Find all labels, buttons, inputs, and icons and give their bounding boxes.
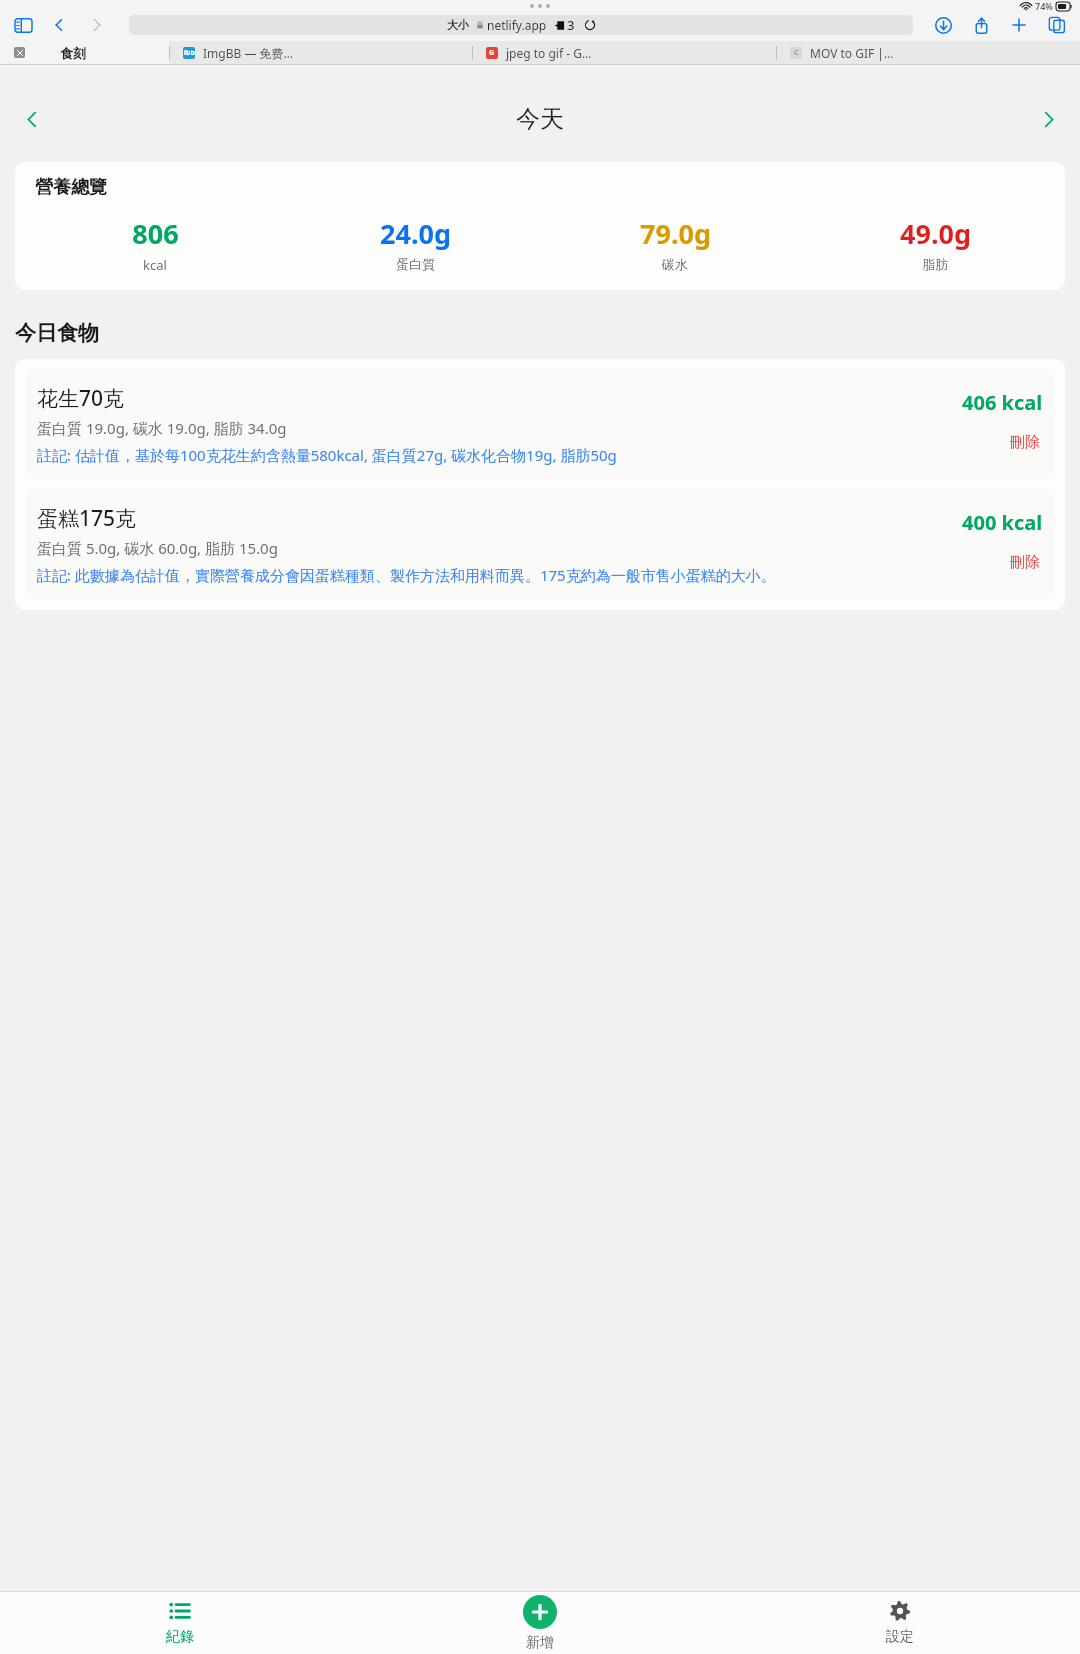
- button[interactable]: 設定: [720, 1592, 1080, 1654]
- staticText: 刪除: [1010, 433, 1040, 452]
- button[interactable]: 大小: [129, 15, 913, 35]
- button[interactable]: 紀錄: [0, 1592, 360, 1654]
- button[interactable]: Close tab: [14, 47, 25, 58]
- button[interactable]: 刪除: [1007, 550, 1043, 575]
- staticText: 食刻: [60, 45, 86, 61]
- button[interactable]: Tabs: [1047, 15, 1067, 35]
- staticText: MOV to GIF |…: [810, 45, 894, 61]
- staticText: 營養總覽: [35, 176, 107, 199]
- button[interactable]: Back: [49, 15, 69, 35]
- staticText: 新增: [526, 1634, 554, 1652]
- staticText: 脂肪: [922, 256, 948, 272]
- button[interactable]: Downloads: [933, 15, 953, 35]
- staticText: 3: [567, 16, 575, 34]
- button[interactable]: 蛋糕175克: [25, 489, 1055, 600]
- staticText: 24.0g: [380, 215, 451, 252]
- staticText: 74%: [1035, 0, 1053, 12]
- button[interactable]: ibb: [169, 41, 472, 64]
- button[interactable]: Share: [971, 15, 991, 35]
- staticText: 49.0g: [900, 215, 971, 252]
- staticText: jpeg to gif - G…: [506, 45, 592, 61]
- staticText: 今天: [516, 104, 564, 134]
- staticText: 花生70克: [37, 384, 125, 413]
- staticText: 註記: 此數據為估計值，實際營養成分會因蛋糕種類、製作方法和用料而異。175克約…: [37, 565, 776, 585]
- staticText: ibb: [184, 48, 195, 58]
- staticText: 註記: 估計值，基於每100克花生約含熱量580kcal, 蛋白質27g, 碳水…: [37, 445, 617, 465]
- button[interactable]: 花生70克: [25, 369, 1055, 480]
- button[interactable]: G: [472, 41, 776, 64]
- button[interactable]: Next day: [1026, 101, 1070, 137]
- staticText: kcal: [143, 256, 167, 274]
- staticText: 設定: [886, 1628, 914, 1646]
- staticText: ImgBB — 免费…: [203, 45, 294, 61]
- button[interactable]: Sidebar: [13, 15, 33, 35]
- staticText: 蛋白質 19.0g, 碳水 19.0g, 脂肪 34.0g: [37, 418, 287, 438]
- staticText: 406 kcal: [962, 389, 1043, 416]
- staticText: 400 kcal: [962, 509, 1043, 536]
- staticText: 碳水: [662, 256, 688, 272]
- staticText: 刪除: [1010, 553, 1040, 572]
- staticText: 紀錄: [166, 1628, 194, 1646]
- button[interactable]: Close tab: [0, 41, 169, 64]
- button[interactable]: C: [776, 41, 1080, 64]
- staticText: 蛋白質: [396, 256, 435, 272]
- button[interactable]: 營養總覽: [15, 162, 1065, 290]
- staticText: C: [794, 48, 799, 58]
- staticText: 今日食物: [15, 320, 99, 346]
- staticText: 806: [132, 215, 179, 252]
- button[interactable]: Add food: [360, 1592, 720, 1654]
- staticText: 蛋糕175克: [37, 504, 137, 533]
- staticText: netlify.app: [487, 17, 547, 33]
- button[interactable]: Previous day: [10, 101, 54, 137]
- button[interactable]: Forward: [87, 15, 107, 35]
- staticText: 大小: [447, 18, 469, 32]
- staticText: 79.0g: [640, 215, 711, 252]
- staticText: G: [489, 48, 495, 58]
- staticText: 蛋白質 5.0g, 碳水 60.0g, 脂肪 15.0g: [37, 538, 278, 558]
- other: Add food: [523, 1595, 557, 1629]
- button[interactable]: 刪除: [1007, 430, 1043, 455]
- button[interactable]: New tab: [1009, 15, 1029, 35]
